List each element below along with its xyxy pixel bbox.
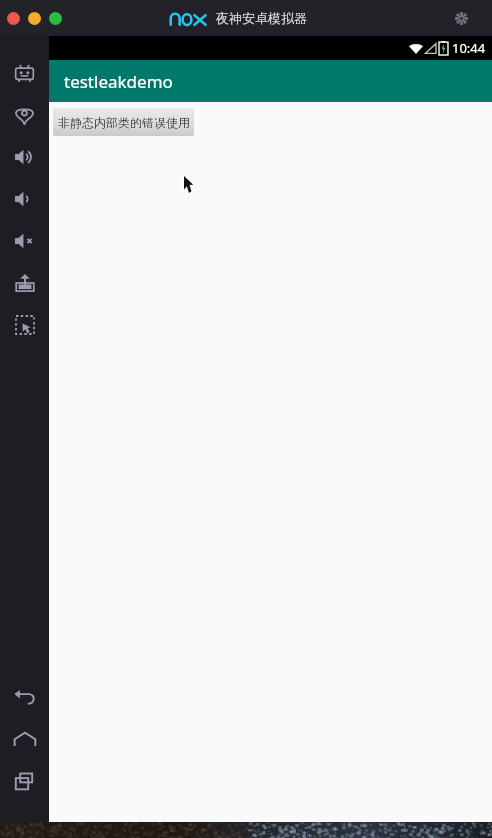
button[interactable]: Volume up <box>0 136 49 178</box>
button[interactable]: 非静态内部类的错误使用 <box>53 108 194 136</box>
button[interactable]: Android robot <box>0 52 49 94</box>
button[interactable]: Minimise <box>28 12 41 25</box>
button[interactable]: Screenshot <box>0 304 49 346</box>
staticText: 非静态内部类的错误使用 <box>58 115 190 130</box>
button[interactable]: Mute <box>0 220 49 262</box>
button[interactable]: Recents <box>0 760 49 802</box>
button[interactable]: Back <box>0 676 49 718</box>
button[interactable]: Close <box>7 12 20 25</box>
staticText: 10:44 <box>452 39 486 57</box>
button[interactable]: Settings <box>450 7 472 29</box>
button[interactable]: Home <box>0 718 49 760</box>
button[interactable]: Location <box>0 94 49 136</box>
button[interactable]: Install APK <box>0 262 49 304</box>
button[interactable]: Volume down <box>0 178 49 220</box>
staticText: testleakdemo <box>64 70 173 93</box>
button[interactable]: Maximise <box>49 12 62 25</box>
staticText: 夜神安卓模拟器 <box>216 10 307 26</box>
